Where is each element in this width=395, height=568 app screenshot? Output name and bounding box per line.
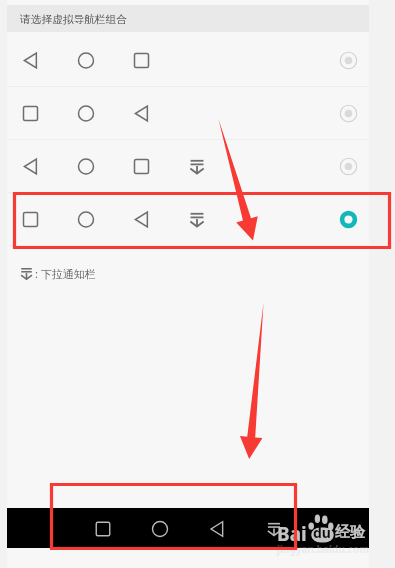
staticText: jingyan.baidu.com xyxy=(277,542,369,556)
button[interactable]: Pull down notification shade xyxy=(250,509,298,549)
button[interactable] xyxy=(7,193,369,246)
staticText: Bai xyxy=(277,521,307,547)
staticText: 请选择虚拟导航栏组合 xyxy=(20,13,127,26)
staticText: : 下拉通知栏 xyxy=(35,266,96,281)
button[interactable]: Recent apps xyxy=(79,509,127,549)
staticText: du xyxy=(313,523,331,542)
button[interactable]: Back xyxy=(193,509,241,549)
button[interactable] xyxy=(7,34,369,87)
button[interactable]: Home xyxy=(136,509,184,549)
staticText: 经验 xyxy=(335,523,365,542)
button[interactable] xyxy=(7,87,369,140)
button[interactable] xyxy=(7,140,369,193)
